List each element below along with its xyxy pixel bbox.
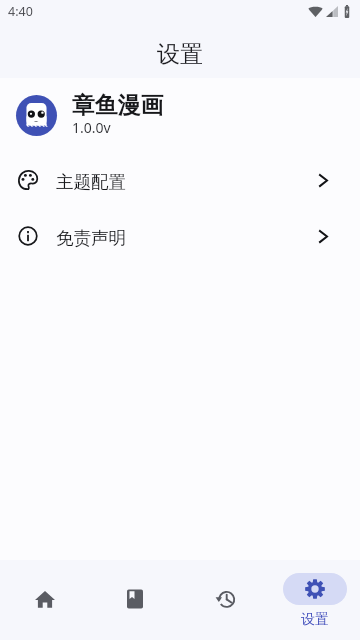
button[interactable]: 免责声明 — [0, 208, 360, 264]
staticText: 设置 — [157, 40, 203, 69]
staticText: 章鱼漫画 — [72, 91, 164, 120]
staticText: 设置 — [301, 611, 329, 629]
button[interactable]: 设置 — [270, 560, 360, 640]
staticText: 4:40 — [8, 3, 33, 20]
staticText: 1.0.0v — [72, 118, 111, 137]
button[interactable]: History — [180, 560, 270, 640]
button[interactable]: Bookshelf — [90, 560, 180, 640]
button[interactable]: 主题配置 — [0, 152, 360, 208]
staticText: 主题配置 — [56, 171, 126, 193]
button[interactable]: 章鱼漫画 — [0, 78, 360, 152]
staticText: 免责声明 — [56, 227, 126, 249]
button[interactable]: Home — [0, 560, 90, 640]
